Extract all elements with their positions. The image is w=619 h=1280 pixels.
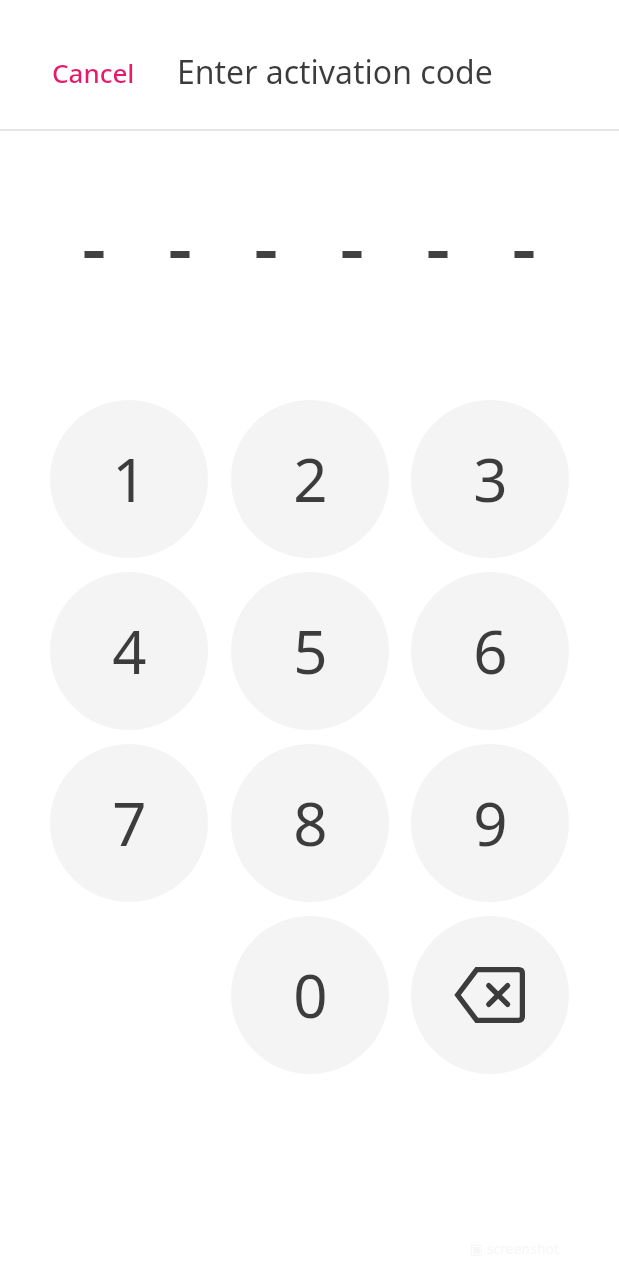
staticText: 1 [112, 438, 147, 520]
staticText: 7 [112, 782, 147, 864]
staticText: 9 [473, 782, 508, 864]
staticText: 8 [293, 782, 328, 864]
staticText: 3 [473, 438, 508, 520]
staticText: 2 [293, 438, 328, 520]
button[interactable]: 3 [411, 400, 569, 558]
button[interactable]: 9 [411, 744, 569, 902]
staticText: 4 [112, 610, 147, 692]
button[interactable]: 0 [231, 916, 389, 1074]
button[interactable]: Backspace [411, 916, 569, 1074]
staticText: 5 [293, 610, 328, 692]
staticText: Cancel [52, 55, 135, 90]
button[interactable]: 1 [50, 400, 208, 558]
staticText: 0 [293, 954, 328, 1036]
button[interactable]: 8 [231, 744, 389, 902]
staticText: Enter activation code [177, 50, 493, 94]
button[interactable]: 5 [231, 572, 389, 730]
button[interactable]: 2 [231, 400, 389, 558]
staticText: ▣ screenshot [470, 1239, 560, 1258]
button[interactable]: 4 [50, 572, 208, 730]
button[interactable]: Cancel [52, 48, 158, 96]
staticText: 6 [473, 610, 508, 692]
button[interactable]: 7 [50, 744, 208, 902]
button[interactable]: 6 [411, 572, 569, 730]
